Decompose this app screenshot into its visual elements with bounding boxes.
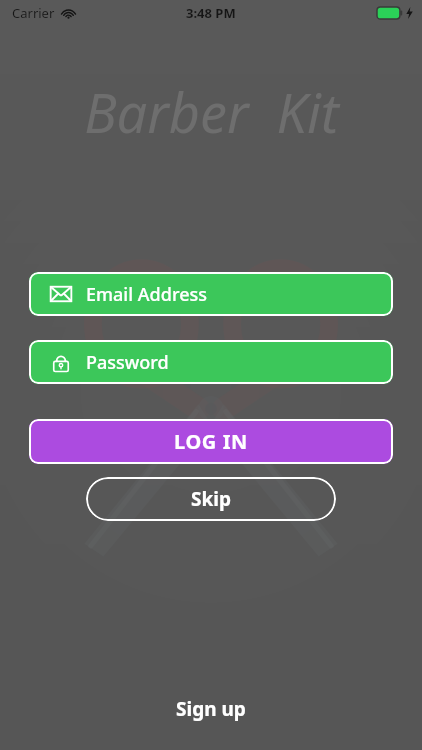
staticText: 3:48 PM <box>186 4 236 22</box>
staticText: Password <box>86 350 169 375</box>
staticText: Barber Kit <box>84 75 339 149</box>
staticText: Email Address <box>86 282 207 307</box>
button[interactable]: Skip <box>86 477 336 521</box>
staticText: Skip <box>191 486 231 512</box>
staticText: Carrier <box>12 4 55 22</box>
button[interactable]: Email Address <box>29 272 393 316</box>
button[interactable]: Sign up <box>176 696 246 722</box>
staticText: LOG IN <box>174 428 248 455</box>
button[interactable]: Password <box>29 340 393 384</box>
staticText: Sign up <box>176 696 246 722</box>
button[interactable]: LOG IN <box>29 419 393 464</box>
